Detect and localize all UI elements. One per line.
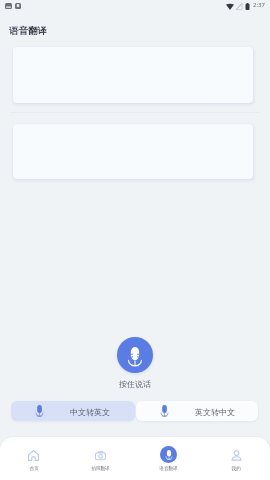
staticText: 语音翻译 bbox=[9, 25, 47, 37]
button[interactable]: 我的 bbox=[202, 437, 270, 480]
staticText: 中文转英文 bbox=[70, 407, 110, 417]
button[interactable]: 英文转中文 bbox=[136, 401, 258, 421]
staticText: 按住说话 bbox=[119, 379, 151, 389]
staticText: 我的 bbox=[231, 466, 241, 472]
button[interactable]: 首页 bbox=[0, 437, 67, 480]
staticText: 英文转中文 bbox=[195, 407, 235, 417]
staticText: 2:37 bbox=[253, 1, 265, 9]
button[interactable]: 中文转英文 bbox=[11, 401, 135, 421]
staticText: 首页 bbox=[29, 466, 39, 472]
button[interactable]: 语音翻译 bbox=[134, 437, 202, 480]
button[interactable]: 拍照翻译 bbox=[67, 437, 134, 480]
button[interactable]: 按住说话 bbox=[117, 337, 153, 373]
staticText: 语音翻译 bbox=[159, 466, 178, 472]
staticText: 拍照翻译 bbox=[91, 466, 110, 472]
